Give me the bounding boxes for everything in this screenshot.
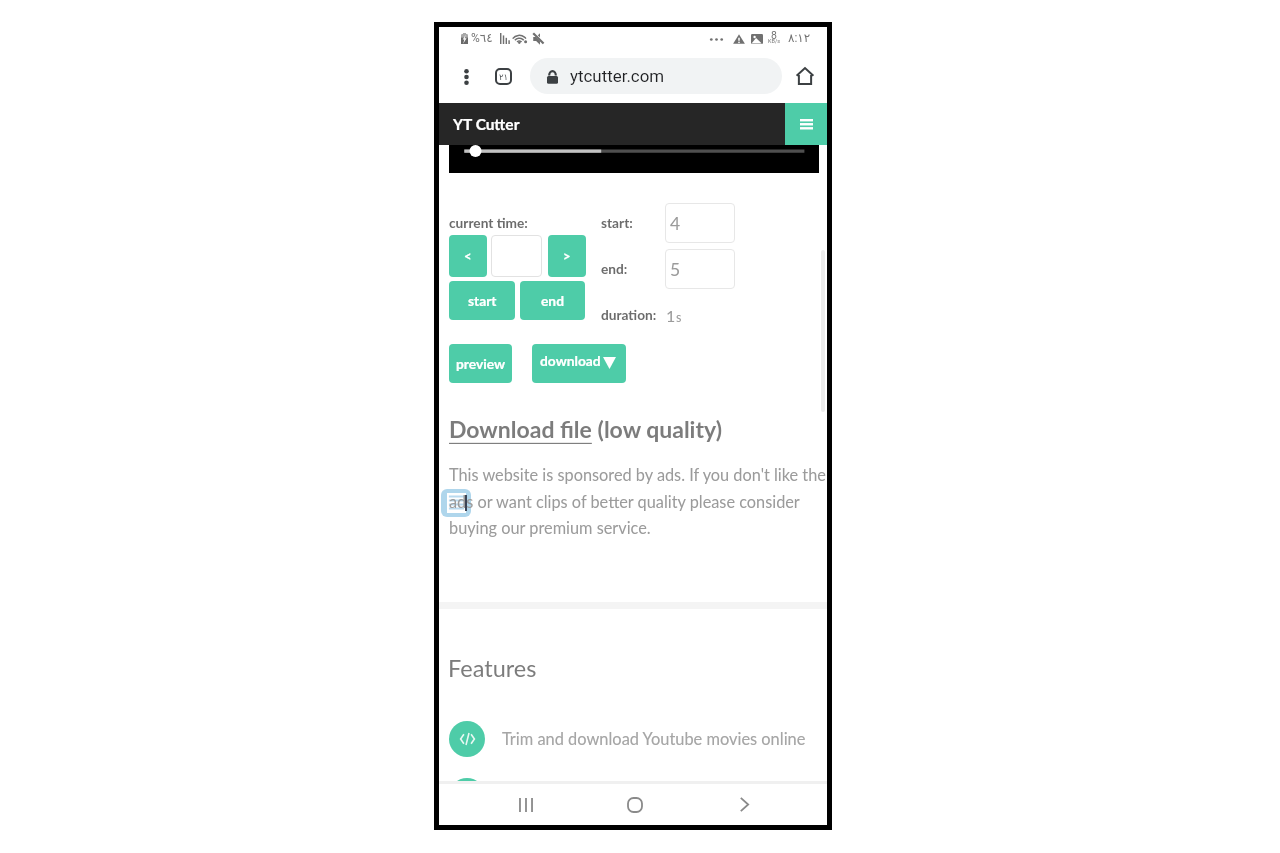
staticText: KB/s <box>768 38 780 44</box>
staticText: end: <box>601 260 628 276</box>
button[interactable]: end <box>520 281 585 320</box>
button[interactable]: Recent apps <box>490 784 562 825</box>
staticText: (low quality) <box>592 415 723 443</box>
staticText: 1 <box>666 306 676 325</box>
staticText: start <box>468 292 497 309</box>
staticText: YT Cutter <box>453 115 520 134</box>
staticText: end <box>541 292 564 309</box>
button[interactable]: Home <box>599 784 671 825</box>
staticText: preview <box>456 355 506 372</box>
staticText: > <box>563 248 571 264</box>
button[interactable]: Trim and download Youtube movies online <box>449 714 827 764</box>
staticText: start: <box>601 214 633 230</box>
staticText: download <box>540 352 601 369</box>
staticText: 4 <box>670 213 681 234</box>
staticText: Features <box>448 654 537 682</box>
staticText: ٢١ <box>499 72 509 82</box>
staticText: duration: <box>601 306 657 322</box>
button[interactable]: Open menu <box>785 103 827 145</box>
staticText: 5 <box>670 259 681 280</box>
button[interactable]: More options <box>454 65 478 89</box>
button[interactable]: download <box>532 344 626 383</box>
button[interactable]: 5 <box>665 249 735 289</box>
button[interactable]: Home <box>792 63 818 89</box>
staticText: This website is sponsored by ads. If you… <box>449 465 829 537</box>
button[interactable]: Tabs <box>495 68 512 85</box>
button[interactable]: preview <box>449 344 512 383</box>
button[interactable]: Download file <box>449 415 592 443</box>
staticText: ٨:١٢ <box>788 31 811 45</box>
staticText: s <box>676 310 682 325</box>
button[interactable]: > <box>548 235 586 277</box>
button[interactable]: Current time field <box>491 235 542 277</box>
button[interactable]: Back <box>708 784 780 825</box>
staticText: ytcutter.com <box>570 66 665 86</box>
button[interactable]: 4 <box>665 203 735 243</box>
button[interactable]: YT Cutter <box>439 103 785 145</box>
staticText: < <box>464 248 472 264</box>
staticText: 8 <box>771 29 777 41</box>
staticText: Trim and download Youtube movies online <box>502 729 806 749</box>
staticText: current time: <box>449 214 528 230</box>
button[interactable]: < <box>449 235 487 277</box>
button[interactable]: ytcutter.com <box>530 58 782 94</box>
button[interactable]: start <box>449 281 515 320</box>
staticText: %٦٤ <box>471 31 493 45</box>
